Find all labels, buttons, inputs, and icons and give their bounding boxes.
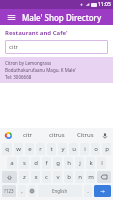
button[interactable]: f bbox=[42, 157, 51, 169]
button[interactable]: e bbox=[25, 143, 34, 155]
staticText: Male' Shop Directory bbox=[22, 12, 102, 23]
button[interactable]: n bbox=[75, 171, 84, 183]
staticText: q bbox=[5, 145, 9, 153]
staticText: citr bbox=[23, 131, 33, 139]
button[interactable]: u bbox=[69, 143, 78, 155]
staticText: j bbox=[79, 159, 81, 167]
staticText: y bbox=[61, 145, 65, 153]
staticText: v bbox=[56, 173, 60, 181]
button[interactable]: Voice input bbox=[100, 131, 109, 140]
staticText: b bbox=[67, 173, 71, 181]
button[interactable]: v bbox=[53, 171, 62, 183]
staticText: p bbox=[105, 145, 109, 153]
staticText: r bbox=[39, 145, 42, 153]
staticText: f bbox=[45, 159, 48, 167]
button[interactable]: w bbox=[14, 143, 23, 155]
staticText: . bbox=[87, 187, 89, 195]
staticText: w bbox=[16, 145, 21, 153]
button[interactable]: z bbox=[19, 171, 29, 183]
staticText: l bbox=[101, 159, 103, 167]
button[interactable]: Citrus bbox=[71, 128, 100, 142]
button[interactable]: g bbox=[53, 157, 62, 169]
button[interactable]: Change language bbox=[28, 185, 36, 197]
staticText: , bbox=[21, 187, 23, 195]
staticText: o bbox=[94, 145, 98, 153]
button[interactable]: citr bbox=[13, 128, 42, 142]
staticText: citrus bbox=[49, 131, 65, 139]
button[interactable]: b bbox=[64, 171, 73, 183]
button[interactable]: j bbox=[75, 157, 84, 169]
button[interactable]: Citron by Lemongrass bbox=[0, 57, 113, 83]
staticText: Boduthakurufaanu Magu, K Male' bbox=[5, 67, 77, 73]
button[interactable]: citrus bbox=[42, 128, 71, 142]
staticText: citr bbox=[9, 43, 19, 51]
staticText: x bbox=[34, 173, 38, 181]
button[interactable]: Open navigation menu bbox=[6, 12, 17, 23]
staticText: g bbox=[56, 159, 60, 167]
staticText: Citron by Lemongrass bbox=[5, 60, 52, 66]
button[interactable]: q bbox=[2, 143, 12, 155]
button[interactable]: y bbox=[58, 143, 67, 155]
staticText: e bbox=[28, 145, 32, 153]
button[interactable]: . bbox=[84, 185, 92, 197]
button[interactable]: citr bbox=[5, 40, 108, 54]
button[interactable]: k bbox=[86, 157, 95, 169]
button[interactable]: t bbox=[47, 143, 56, 155]
staticText: a bbox=[10, 159, 14, 167]
button[interactable]: Shift bbox=[2, 171, 17, 183]
button[interactable]: Backspace bbox=[97, 171, 111, 183]
button[interactable]: c bbox=[42, 171, 51, 183]
button[interactable]: h bbox=[64, 157, 73, 169]
button[interactable]: , bbox=[18, 185, 26, 197]
staticText: u bbox=[72, 145, 76, 153]
staticText: Tel: 3006668 bbox=[5, 74, 32, 80]
staticText: 11:05 bbox=[98, 1, 111, 8]
button[interactable]: l bbox=[97, 157, 106, 169]
staticText: s bbox=[23, 159, 26, 167]
button[interactable]: r bbox=[36, 143, 45, 155]
button[interactable]: a bbox=[7, 157, 17, 169]
staticText: h bbox=[67, 159, 71, 167]
staticText: c bbox=[45, 173, 48, 181]
button[interactable]: ?123 bbox=[2, 185, 16, 197]
staticText: k bbox=[89, 159, 93, 167]
button[interactable]: s bbox=[19, 157, 29, 169]
button[interactable]: i bbox=[80, 143, 89, 155]
staticText: n bbox=[78, 173, 82, 181]
button[interactable]: Google bbox=[4, 131, 13, 140]
staticText: t bbox=[50, 145, 53, 153]
button[interactable]: x bbox=[31, 171, 40, 183]
staticText: i bbox=[84, 145, 86, 153]
button[interactable]: Enter bbox=[94, 185, 111, 197]
button[interactable]: p bbox=[102, 143, 111, 155]
staticText: d bbox=[34, 159, 38, 167]
button[interactable]: o bbox=[91, 143, 100, 155]
button[interactable]: English bbox=[38, 185, 82, 197]
staticText: Restaurant and Cafe' bbox=[5, 29, 68, 37]
button[interactable]: m bbox=[86, 171, 95, 183]
button[interactable]: d bbox=[31, 157, 40, 169]
staticText: m bbox=[88, 173, 94, 181]
staticText: ?123 bbox=[4, 188, 14, 194]
staticText: English bbox=[52, 188, 68, 194]
staticText: Citrus bbox=[77, 131, 94, 139]
staticText: z bbox=[23, 173, 26, 181]
